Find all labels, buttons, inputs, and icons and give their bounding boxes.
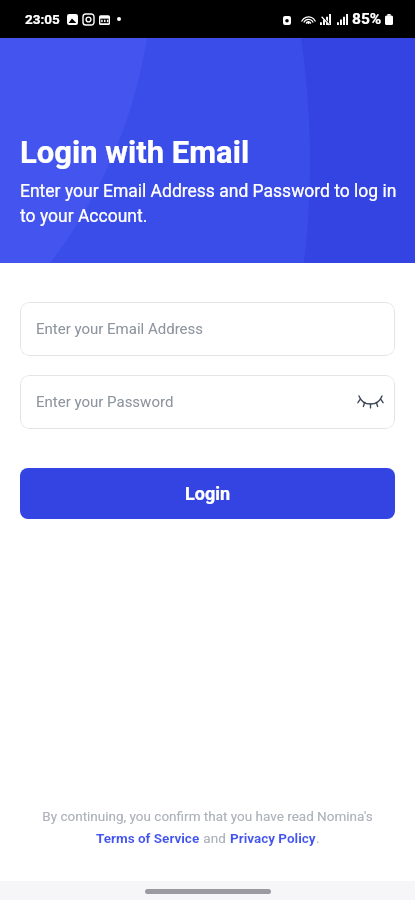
staticText: Privacy Policy: [230, 830, 316, 846]
staticText: .: [316, 830, 320, 846]
staticText: Enter your Email Address: [36, 320, 204, 338]
button[interactable]: Show password: [355, 387, 385, 417]
button[interactable]: Terms of Service: [96, 830, 200, 846]
button[interactable]: Enter your Email Address: [20, 302, 395, 356]
staticText: Enter your Password: [36, 393, 174, 411]
staticText: By continuing, you confirm that you have…: [42, 808, 373, 824]
staticText: Login: [185, 483, 231, 504]
staticText: and: [200, 830, 230, 846]
staticText: Login with Email: [20, 134, 250, 170]
staticText: 23:05: [25, 11, 60, 27]
button[interactable]: Privacy Policy: [230, 830, 316, 846]
button[interactable]: Login: [20, 468, 395, 519]
staticText: 85%: [352, 10, 382, 28]
staticText: Enter your Email Address and Password to…: [20, 181, 397, 226]
button[interactable]: Enter your Password: [20, 375, 395, 429]
staticText: Terms of Service: [96, 830, 200, 846]
